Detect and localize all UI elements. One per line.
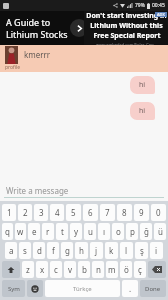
- staticText: u: [88, 226, 93, 237]
- button[interactable]: p: [126, 223, 138, 240]
- button[interactable]: Backspace: [148, 261, 166, 278]
- button[interactable]: 1: [2, 204, 16, 221]
- staticText: Türkçe: [73, 285, 92, 293]
- button[interactable]: ğ: [140, 223, 152, 240]
- button[interactable]: k: [105, 242, 118, 259]
- button[interactable]: b: [78, 261, 90, 278]
- staticText: b: [82, 264, 87, 275]
- button[interactable]: ş: [135, 242, 148, 259]
- button[interactable]: w: [15, 223, 26, 240]
- staticText: p: [130, 226, 135, 237]
- button[interactable]: Shift: [2, 261, 20, 278]
- staticText: 00:45: [152, 2, 165, 9]
- button[interactable]: h: [75, 242, 88, 259]
- staticText: 2: [23, 207, 28, 218]
- button[interactable]: 2: [18, 204, 32, 221]
- button[interactable]: z: [22, 261, 34, 278]
- button[interactable]: .: [122, 280, 138, 297]
- staticText: Done: [145, 285, 161, 293]
- button[interactable]: Sym: [2, 280, 25, 297]
- button[interactable]: Emoji: [27, 280, 43, 297]
- staticText: k: [109, 245, 114, 256]
- staticText: ö: [124, 264, 129, 275]
- staticText: y: [74, 226, 79, 237]
- button[interactable]: 9: [134, 204, 149, 221]
- button[interactable]: kmerrr: [0, 45, 168, 72]
- staticText: o: [116, 226, 121, 237]
- button[interactable]: Türkçe: [45, 280, 120, 297]
- button[interactable]: u: [84, 223, 96, 240]
- button[interactable]: v: [64, 261, 76, 278]
- button[interactable]: n: [92, 261, 104, 278]
- staticText: 8: [122, 207, 127, 218]
- button[interactable]: 5: [66, 204, 81, 221]
- button[interactable]: Done: [140, 280, 166, 297]
- staticText: Sym: [8, 285, 20, 293]
- button[interactable]: r: [42, 223, 54, 240]
- staticText: j: [95, 245, 98, 256]
- staticText: d: [37, 245, 42, 256]
- button[interactable]: t: [56, 223, 68, 240]
- staticText: Write a message: [6, 185, 69, 196]
- button[interactable]: 0: [151, 204, 166, 221]
- staticText: ü: [158, 226, 163, 237]
- button[interactable]: ı: [98, 223, 110, 240]
- button[interactable]: Open offer: [70, 19, 88, 37]
- staticText: v: [68, 264, 73, 275]
- staticText: g: [65, 245, 70, 256]
- button[interactable]: j: [90, 242, 103, 259]
- button[interactable]: Write a message: [4, 183, 164, 197]
- staticText: z: [26, 264, 30, 275]
- staticText: h: [79, 245, 84, 256]
- button[interactable]: ü: [154, 223, 166, 240]
- button[interactable]: o: [112, 223, 124, 240]
- button[interactable]: 7: [100, 204, 115, 221]
- staticText: x: [40, 264, 45, 275]
- staticText: Lithium Without this: [90, 21, 163, 31]
- staticText: 6: [88, 207, 93, 218]
- button[interactable]: 8: [117, 204, 132, 221]
- button[interactable]: 3: [34, 204, 48, 221]
- staticText: 4: [55, 207, 60, 218]
- staticText: A Guide to: [6, 16, 51, 28]
- staticText: n: [96, 264, 101, 275]
- staticText: s: [23, 245, 27, 256]
- staticText: l: [125, 245, 128, 256]
- button[interactable]: a: [5, 242, 17, 259]
- staticText: ş: [140, 245, 144, 256]
- staticText: 79%: [135, 2, 145, 9]
- staticText: profile: [5, 64, 21, 71]
- staticText: i: [155, 245, 158, 256]
- staticText: w: [17, 226, 24, 237]
- button[interactable]: hi: [130, 102, 155, 120]
- button[interactable]: x: [36, 261, 48, 278]
- button[interactable]: s: [19, 242, 31, 259]
- button[interactable]: q: [2, 223, 13, 240]
- staticText: 0: [156, 207, 161, 218]
- staticText: kmerrr: [24, 49, 51, 60]
- button[interactable]: e: [28, 223, 40, 240]
- button[interactable]: l: [120, 242, 133, 259]
- staticText: c: [54, 264, 58, 275]
- button[interactable]: 4: [50, 204, 64, 221]
- button[interactable]: g: [61, 242, 73, 259]
- button[interactable]: 6: [83, 204, 98, 221]
- button[interactable]: ç: [134, 261, 146, 278]
- button[interactable]: f: [47, 242, 59, 259]
- button[interactable]: m: [106, 261, 118, 278]
- button[interactable]: c: [50, 261, 62, 278]
- staticText: 5: [71, 207, 76, 218]
- button[interactable]: hi: [130, 76, 155, 94]
- button[interactable]: Advertisement: [0, 11, 168, 45]
- staticText: 7: [105, 207, 110, 218]
- staticText: .: [129, 283, 132, 294]
- button[interactable]: i: [150, 242, 163, 259]
- button[interactable]: y: [70, 223, 82, 240]
- button[interactable]: d: [33, 242, 45, 259]
- staticText: hi: [139, 106, 146, 116]
- staticText: ADX: [157, 12, 165, 17]
- staticText: Lithium Stocks: [6, 28, 68, 40]
- staticText: 1: [7, 207, 12, 218]
- staticText: ı: [103, 226, 106, 237]
- button[interactable]: ö: [120, 261, 132, 278]
